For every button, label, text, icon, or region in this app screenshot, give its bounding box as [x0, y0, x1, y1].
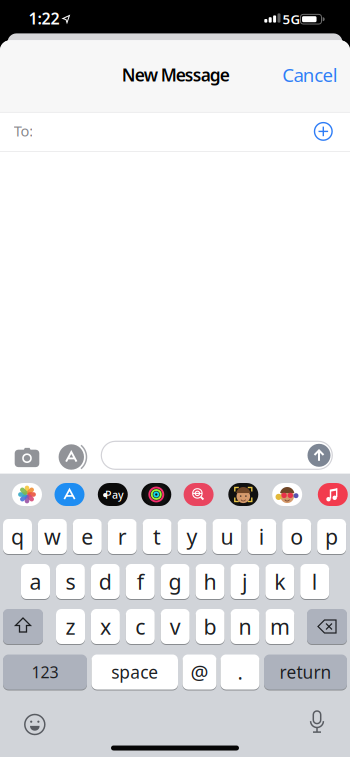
staticText: w — [44, 522, 61, 551]
button[interactable]: o — [282, 519, 311, 554]
staticText: b — [204, 612, 217, 641]
button[interactable]: Camera — [13, 445, 41, 469]
staticText: d — [99, 567, 112, 596]
staticText: To: — [14, 121, 33, 141]
staticText: j — [242, 567, 248, 596]
button[interactable]: h — [195, 564, 224, 599]
staticText: . — [237, 659, 242, 685]
staticText: 1:22 — [28, 8, 59, 29]
staticText: p — [325, 522, 338, 551]
button[interactable]: Memoji Stickers — [228, 483, 258, 506]
button[interactable]: r — [108, 519, 137, 554]
button[interactable]: c — [126, 609, 155, 644]
staticText: New Message — [122, 63, 230, 86]
staticText: u — [220, 522, 233, 551]
staticText: e — [81, 522, 93, 551]
staticText: v — [170, 612, 181, 641]
button[interactable]: 123 — [3, 654, 87, 689]
staticText: Cancel — [282, 62, 338, 87]
button[interactable]: Add Contact — [310, 118, 336, 144]
button[interactable]: e — [73, 519, 102, 554]
button[interactable]: Activity — [141, 483, 171, 506]
button[interactable]: Emoji — [23, 712, 47, 736]
staticText: s — [65, 567, 75, 596]
button[interactable]: u — [212, 519, 241, 554]
button[interactable]: v — [161, 609, 190, 644]
button[interactable]: t — [143, 519, 172, 554]
button[interactable]: Shift — [3, 609, 43, 644]
button[interactable]: y — [177, 519, 206, 554]
staticText: q — [11, 522, 24, 551]
staticText: f — [137, 567, 144, 596]
button[interactable]: x — [91, 609, 120, 644]
staticText: z — [65, 612, 75, 641]
staticText: l — [312, 567, 318, 596]
staticText: n — [238, 612, 251, 641]
button[interactable]: j — [230, 564, 259, 599]
staticText: a — [29, 567, 41, 596]
button[interactable]: m — [265, 609, 294, 644]
button[interactable]: space — [91, 654, 178, 689]
button[interactable]: z — [56, 609, 85, 644]
button[interactable]: @ — [182, 654, 216, 689]
staticText: c — [135, 612, 145, 641]
button[interactable]: Delete — [307, 609, 347, 644]
button[interactable]: k — [265, 564, 294, 599]
button[interactable]: Apple Pay — [98, 483, 128, 506]
button[interactable]: i — [247, 519, 276, 554]
staticText: x — [100, 612, 111, 641]
button[interactable]: App Store — [54, 483, 84, 506]
staticText: o — [290, 522, 303, 551]
staticText: r — [118, 522, 127, 551]
staticText: m — [270, 612, 290, 641]
button[interactable]: Apps — [59, 444, 84, 470]
button[interactable]: return — [264, 654, 347, 689]
button[interactable]: g — [161, 564, 190, 599]
button[interactable]: Memoji — [272, 483, 302, 506]
button[interactable]: Send — [307, 444, 330, 467]
staticText: y — [186, 522, 197, 551]
button[interactable]: f — [126, 564, 155, 599]
button[interactable]: d — [91, 564, 120, 599]
button[interactable]: Photos — [12, 483, 42, 506]
staticText: Pay — [105, 487, 124, 502]
button[interactable]: Images — [184, 483, 214, 506]
staticText: space — [111, 660, 158, 683]
staticText: 5G — [282, 10, 300, 28]
button[interactable]: b — [196, 609, 225, 644]
staticText: return — [279, 660, 331, 683]
button[interactable]: l — [300, 564, 329, 599]
button[interactable]: Cancel — [272, 60, 348, 90]
button[interactable]: . — [220, 654, 259, 689]
staticText: 123 — [31, 661, 58, 683]
button[interactable]: p — [317, 519, 346, 554]
staticText: t — [153, 522, 161, 551]
staticText: i — [259, 522, 265, 551]
staticText: h — [203, 567, 216, 596]
staticText: k — [274, 567, 285, 596]
button[interactable]: n — [230, 609, 259, 644]
button[interactable]: s — [56, 564, 85, 599]
button[interactable]: q — [3, 519, 32, 554]
button[interactable]: w — [38, 519, 67, 554]
staticText: g — [169, 567, 182, 596]
button[interactable]: Dictation — [305, 710, 329, 734]
staticText: @ — [190, 659, 208, 685]
button[interactable]: a — [21, 564, 50, 599]
button[interactable]: Music — [318, 483, 348, 506]
